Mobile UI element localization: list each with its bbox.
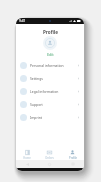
staticText: Home	[23, 156, 31, 160]
staticText: 9:41	[19, 19, 26, 23]
button[interactable]: Legal information	[16, 85, 84, 98]
staticText: Support	[30, 102, 43, 107]
staticText: Profile	[43, 29, 58, 35]
button[interactable]: Home	[16, 149, 38, 160]
staticText: Edit	[47, 52, 54, 57]
button[interactable]: Settings	[16, 72, 84, 85]
staticText: Imprint	[30, 115, 42, 120]
staticText: Profile	[69, 156, 77, 160]
staticText: Legal information	[30, 89, 59, 94]
button[interactable]: Profile	[61, 149, 84, 160]
button[interactable]: Support	[16, 98, 84, 111]
staticText: Settings	[30, 76, 43, 81]
button[interactable]: Personal information	[16, 59, 84, 72]
staticText: Orders	[45, 156, 54, 160]
button[interactable]: Imprint	[16, 111, 84, 124]
staticText: Personal information	[30, 63, 64, 68]
button[interactable]: Orders	[38, 149, 61, 160]
